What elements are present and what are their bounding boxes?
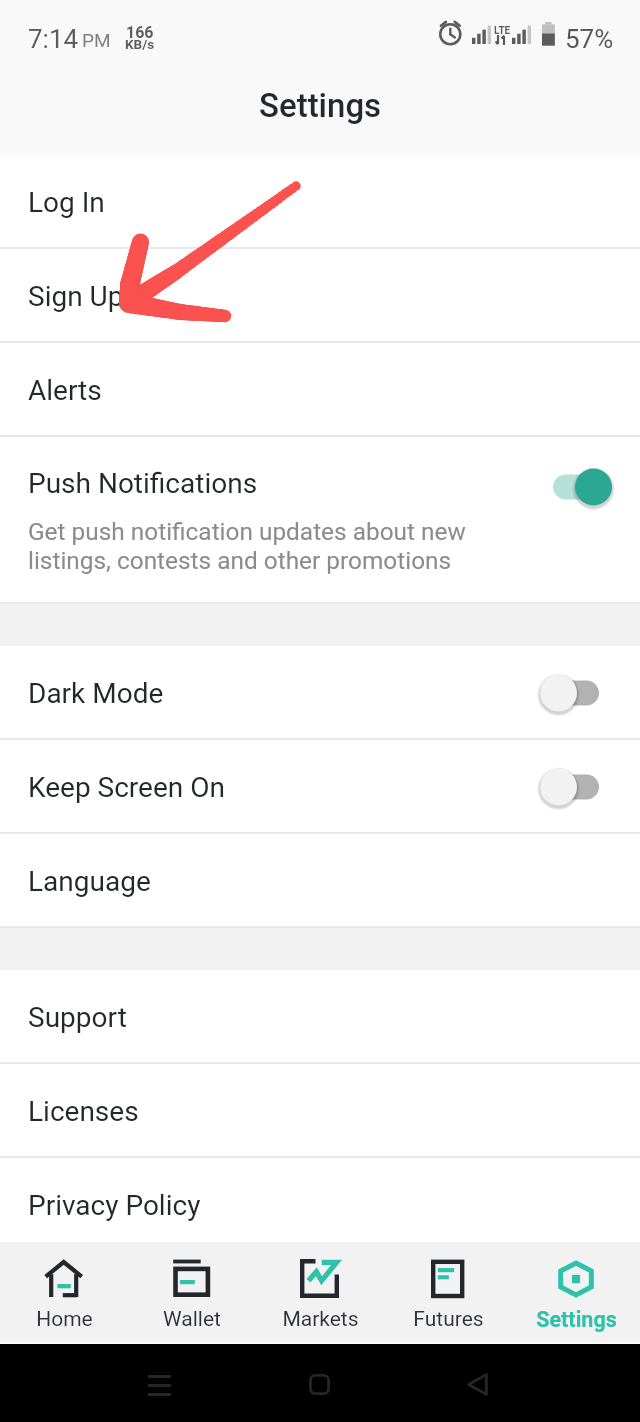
button[interactable]: Push Notifications on — [540, 465, 612, 509]
button[interactable]: Alerts — [0, 343, 640, 437]
button[interactable]: Futures — [384, 1242, 512, 1342]
button[interactable]: Recents — [148, 1375, 171, 1396]
staticText: 7:14 — [28, 24, 79, 54]
staticText: 57% — [565, 24, 614, 54]
button[interactable]: Support — [0, 970, 640, 1064]
button[interactable]: Language — [0, 834, 640, 928]
staticText: Futures — [413, 1307, 484, 1332]
staticText: Licenses — [28, 1095, 139, 1128]
staticText: Log In — [28, 186, 105, 219]
staticText: Markets — [282, 1307, 359, 1332]
button[interactable]: Settings — [512, 1242, 640, 1342]
button[interactable]: Back — [467, 1373, 488, 1396]
staticText: Keep Screen On — [28, 771, 225, 804]
button[interactable]: Privacy Policy — [0, 1158, 640, 1252]
staticText: Sign Up — [28, 280, 124, 313]
staticText: Wallet — [163, 1307, 221, 1332]
button[interactable]: Sign Up — [0, 249, 640, 343]
staticText: Support — [28, 1001, 127, 1034]
staticText: Settings — [259, 86, 382, 125]
staticText: Dark Mode — [28, 677, 164, 710]
staticText: 166 — [126, 23, 154, 42]
button[interactable]: Licenses — [0, 1064, 640, 1158]
staticText: KB/s — [125, 36, 155, 52]
button[interactable]: Wallet — [128, 1242, 256, 1342]
staticText: Language — [28, 865, 151, 898]
button[interactable]: Home — [309, 1374, 330, 1395]
staticText: Settings — [536, 1307, 617, 1332]
staticText: Get push notification updates about new … — [28, 517, 466, 575]
button[interactable]: Dark Mode — [0, 646, 640, 740]
button[interactable]: Home — [0, 1242, 128, 1342]
staticText: LTE — [494, 25, 511, 37]
staticText: Alerts — [28, 374, 102, 407]
staticText: Push Notifications — [28, 467, 258, 500]
button[interactable]: Dark Mode off — [540, 671, 612, 715]
button[interactable]: Markets — [256, 1242, 384, 1342]
button[interactable]: Push Notifications — [0, 437, 640, 604]
staticText: Home — [36, 1307, 93, 1332]
button[interactable]: Keep Screen On — [0, 740, 640, 834]
staticText: Privacy Policy — [28, 1189, 201, 1222]
button[interactable]: Log In — [0, 155, 640, 249]
button[interactable]: Keep Screen On off — [540, 765, 612, 809]
staticText: PM — [82, 29, 111, 51]
